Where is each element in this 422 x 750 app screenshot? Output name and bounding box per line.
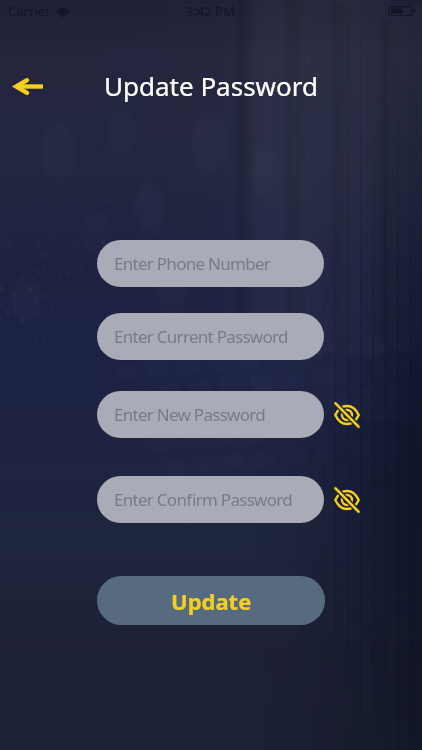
staticText: Enter Current Password <box>114 325 288 348</box>
button[interactable]: Back <box>8 66 48 106</box>
button[interactable]: Toggle password visibility <box>331 484 363 516</box>
staticText: 3:42 PM <box>186 2 236 20</box>
staticText: Update Password <box>104 68 318 103</box>
button[interactable]: Enter New Password <box>97 391 324 438</box>
button[interactable]: Enter Confirm Password <box>97 476 324 523</box>
staticText: Enter Confirm Password <box>114 488 292 511</box>
staticText: Update <box>171 586 252 616</box>
button[interactable]: Toggle password visibility <box>331 399 363 431</box>
button[interactable]: Enter Current Password <box>97 313 324 360</box>
staticText: Enter New Password <box>114 403 266 426</box>
staticText: Carrier <box>8 2 51 20</box>
button[interactable]: Update <box>97 576 325 625</box>
button[interactable]: Enter Phone Number <box>97 240 324 287</box>
staticText: Enter Phone Number <box>114 252 271 275</box>
